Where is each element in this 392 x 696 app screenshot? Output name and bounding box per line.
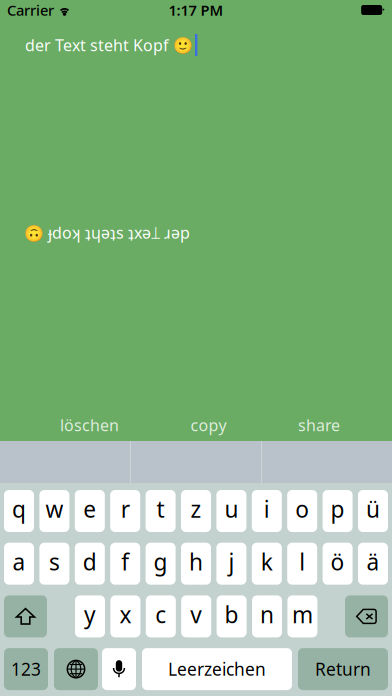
staticText: r bbox=[121, 494, 130, 524]
staticText: p bbox=[331, 494, 345, 524]
button[interactable]: copy bbox=[190, 419, 226, 441]
button[interactable]: löschen bbox=[60, 419, 119, 441]
staticText: i bbox=[264, 494, 270, 524]
staticText: e bbox=[83, 494, 96, 524]
button[interactable]: i bbox=[252, 490, 282, 532]
staticText: n bbox=[260, 599, 274, 629]
button[interactable]: e bbox=[75, 490, 105, 532]
button[interactable]: h bbox=[181, 543, 211, 585]
button[interactable]: x bbox=[110, 595, 140, 637]
staticText: l bbox=[299, 547, 305, 577]
staticText: z bbox=[190, 494, 201, 524]
staticText: a bbox=[12, 547, 25, 577]
button[interactable]: k bbox=[252, 543, 282, 585]
staticText: share bbox=[298, 414, 340, 436]
staticText: 1:17 PM bbox=[168, 0, 223, 20]
button[interactable]: s bbox=[39, 543, 69, 585]
button[interactable]: n bbox=[252, 595, 282, 637]
staticText: ü bbox=[366, 494, 380, 524]
button[interactable]: o bbox=[287, 490, 317, 532]
staticText: ö bbox=[331, 547, 345, 577]
button[interactable]: u bbox=[216, 490, 246, 532]
staticText: x bbox=[119, 599, 131, 629]
button[interactable]: Shift bbox=[4, 595, 47, 637]
staticText: d bbox=[83, 547, 97, 577]
staticText: Return bbox=[315, 658, 371, 681]
button[interactable]: f bbox=[110, 543, 140, 585]
button[interactable]: ö bbox=[323, 543, 353, 585]
button[interactable]: c bbox=[146, 595, 176, 637]
button[interactable]: r bbox=[110, 490, 140, 532]
button[interactable]: Leerzeichen bbox=[142, 648, 292, 690]
button[interactable]: share bbox=[298, 419, 340, 441]
button[interactable]: d bbox=[75, 543, 105, 585]
staticText: v bbox=[190, 599, 202, 629]
staticText: y bbox=[84, 599, 96, 629]
button[interactable]: Next keyboard bbox=[54, 648, 98, 690]
staticText: o bbox=[295, 494, 309, 524]
staticText: g bbox=[154, 547, 168, 577]
button[interactable]: q bbox=[4, 490, 34, 532]
button[interactable]: 123 bbox=[4, 648, 48, 690]
button[interactable]: Dictate bbox=[102, 648, 136, 690]
staticText: löschen bbox=[60, 414, 119, 436]
staticText: k bbox=[261, 547, 273, 577]
button[interactable]: Delete bbox=[345, 595, 388, 637]
staticText: der Text steht Kopf 🙂 bbox=[25, 34, 193, 56]
button[interactable]: ä bbox=[358, 543, 388, 585]
staticText: s bbox=[49, 547, 60, 577]
button[interactable]: t bbox=[146, 490, 176, 532]
staticText: c bbox=[155, 599, 166, 629]
button[interactable]: z bbox=[181, 490, 211, 532]
staticText: Carrier bbox=[7, 0, 54, 20]
button[interactable]: b bbox=[217, 595, 247, 637]
button[interactable]: a bbox=[4, 543, 34, 585]
staticText: 🙃 ɟdoʞ ʇɥǝʇs ʇxǝ⟘ ɹǝp bbox=[24, 222, 190, 243]
staticText: h bbox=[189, 547, 203, 577]
button[interactable]: l bbox=[287, 543, 317, 585]
staticText: copy bbox=[190, 414, 226, 436]
button[interactable]: p bbox=[323, 490, 353, 532]
staticText: f bbox=[121, 547, 129, 577]
button[interactable]: j bbox=[216, 543, 246, 585]
staticText: ä bbox=[366, 547, 379, 577]
staticText: j bbox=[228, 547, 234, 577]
staticText: w bbox=[45, 494, 63, 524]
button[interactable]: v bbox=[181, 595, 211, 637]
staticText: t bbox=[157, 494, 165, 524]
button[interactable]: g bbox=[146, 543, 176, 585]
button[interactable]: m bbox=[287, 595, 317, 637]
staticText: 123 bbox=[11, 658, 41, 681]
button[interactable]: Return bbox=[298, 648, 388, 690]
button[interactable]: ü bbox=[358, 490, 388, 532]
staticText: q bbox=[12, 494, 26, 524]
button[interactable]: w bbox=[39, 490, 69, 532]
button[interactable]: y bbox=[75, 595, 105, 637]
staticText: b bbox=[225, 599, 239, 629]
staticText: u bbox=[224, 494, 238, 524]
staticText: m bbox=[292, 599, 313, 629]
staticText: Leerzeichen bbox=[168, 658, 266, 681]
